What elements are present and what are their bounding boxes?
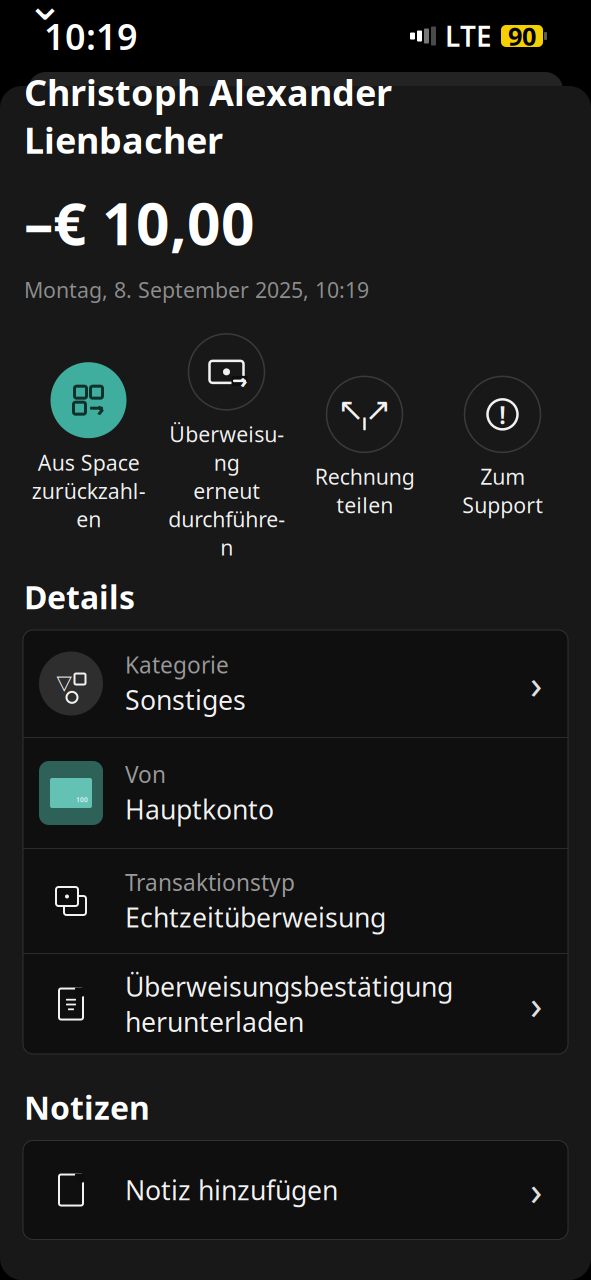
staticText: Christoph Alexander Lienbacher [24,68,392,164]
staticText: Rechnung teilen [314,462,414,519]
staticText: Notizen [24,1086,150,1128]
button[interactable]: Transaktionstyp [23,849,568,953]
button[interactable]: Schließen [18,0,72,26]
staticText: Echtzeitüberweisung [125,899,386,935]
staticText: › [240,368,247,393]
button[interactable]: 100 [23,738,568,848]
button[interactable]: ↖ [295,376,433,519]
button[interactable]: › [157,334,295,562]
staticText: Details [24,575,135,618]
staticText: Notiz hinzufügen [125,1172,338,1208]
staticText: ↖ [337,391,364,427]
button[interactable]: › [19,362,157,533]
staticText: 90 [508,19,536,53]
button[interactable]: ! [433,376,571,519]
button[interactable]: Überweisungsbestätigung herunterladen [23,954,568,1054]
staticText: 10:19 [44,12,138,60]
button[interactable]: Notiz hinzufügen [23,1140,568,1239]
staticText: Sonstiges [125,682,246,717]
staticText: Hauptkonto [125,791,274,827]
staticText: Montag, 8. September 2025, 10:19 [24,275,369,304]
staticText: › [530,977,542,1030]
staticText: ! [499,397,506,431]
staticText: › [530,657,542,710]
staticText: Kategorie [125,650,229,680]
staticText: Von [125,759,166,789]
staticText: 100 [76,795,88,804]
staticText: ⌄ [26,0,64,30]
staticText: Überweisungsbestätigung herunterladen [125,969,453,1039]
staticText: Transaktionstyp [125,867,295,897]
staticText: ↗ [364,391,391,427]
staticText: LTE [445,17,492,55]
staticText: › [96,395,104,421]
staticText: –€ 10,00 [24,184,255,261]
staticText: Überweisung erneut durchführen [168,420,285,562]
staticText: ▽ [56,671,71,694]
staticText: › [530,1163,542,1216]
staticText: Zum Support [462,462,543,519]
staticText: Aus Space zurückzahlen [31,448,145,533]
button[interactable]: ▽ [23,630,568,737]
